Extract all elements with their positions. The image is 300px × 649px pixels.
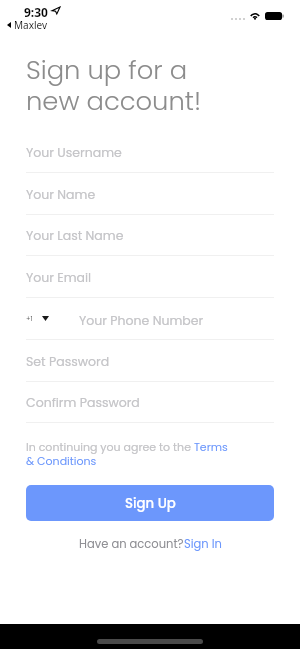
button[interactable]: Set Password xyxy=(26,351,274,382)
staticText: +1 xyxy=(26,314,33,323)
staticText: Confirm Password xyxy=(26,394,140,411)
staticText: In continuing you agree to the Terms & C… xyxy=(26,439,228,468)
staticText: 9:30 xyxy=(24,4,48,20)
button[interactable]: Your Last Name xyxy=(26,225,274,256)
staticText: Your Username xyxy=(26,144,122,161)
button[interactable]: +1 xyxy=(26,309,274,340)
staticText: Sign up for a new account! xyxy=(26,52,202,119)
staticText: Your Last Name xyxy=(26,227,124,244)
staticText: Sign Up xyxy=(125,494,176,513)
button[interactable]: Your Name xyxy=(26,184,274,215)
button[interactable]: Your Username xyxy=(26,142,274,173)
button[interactable]: In continuing you agree to the Terms & C… xyxy=(26,439,274,468)
staticText: Your Phone Number xyxy=(79,312,204,329)
button[interactable]: Confirm Password xyxy=(26,392,274,423)
button[interactable]: Maxlev xyxy=(7,18,48,32)
staticText: Set Password xyxy=(26,353,110,370)
button[interactable]: Your Email xyxy=(26,267,274,298)
staticText: Your Email xyxy=(26,269,92,286)
button[interactable]: Sign Up xyxy=(26,485,274,521)
button[interactable]: Sign In xyxy=(184,536,222,552)
staticText: Your Name xyxy=(26,186,96,203)
other: Location xyxy=(52,7,60,14)
staticText: Have an account? xyxy=(79,536,184,552)
staticText: Maxlev xyxy=(14,18,48,32)
